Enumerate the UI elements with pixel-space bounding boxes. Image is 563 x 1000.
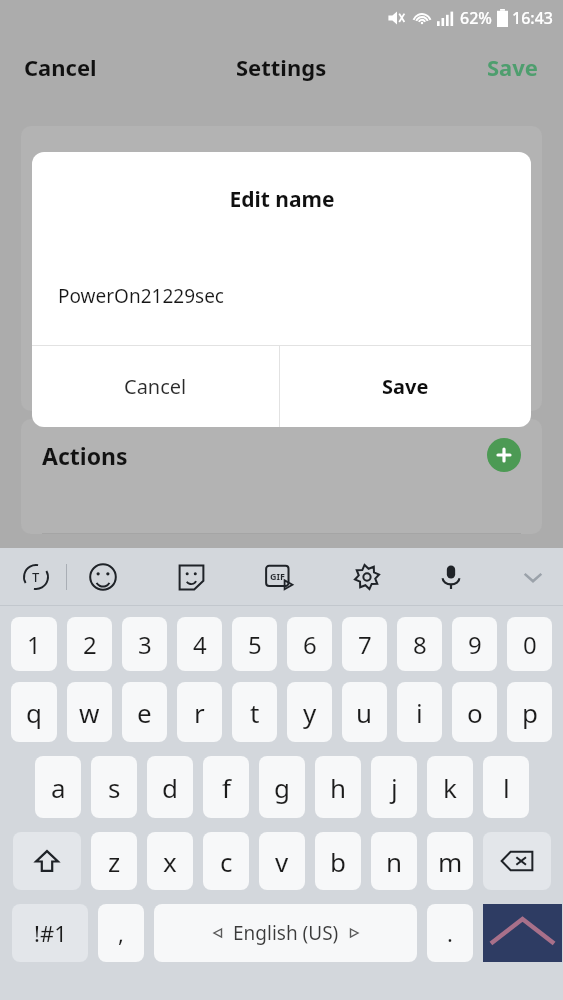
- button[interactable]: c: [203, 832, 249, 890]
- staticText: Save: [382, 373, 429, 400]
- button[interactable]: Keyboard settings: [345, 555, 389, 599]
- staticText: 16:43: [512, 7, 553, 29]
- button[interactable]: .: [427, 904, 473, 962]
- button[interactable]: 9: [452, 617, 497, 671]
- button[interactable]: Shift: [13, 832, 81, 890]
- button[interactable]: Add action: [487, 438, 521, 472]
- button[interactable]: w: [67, 682, 112, 742]
- button[interactable]: d: [147, 756, 193, 818]
- button[interactable]: e: [122, 682, 167, 742]
- staticText: Save: [487, 52, 538, 82]
- button[interactable]: z: [91, 832, 137, 890]
- button[interactable]: x: [147, 832, 193, 890]
- staticText: k: [443, 770, 457, 805]
- button[interactable]: j: [371, 756, 417, 818]
- staticText: .: [447, 918, 453, 948]
- staticText: h: [330, 770, 347, 805]
- button[interactable]: 6: [287, 617, 332, 671]
- button[interactable]: 2: [67, 617, 112, 671]
- staticText: r: [194, 695, 205, 730]
- button[interactable]: h: [315, 756, 361, 818]
- staticText: 1: [27, 628, 41, 661]
- button[interactable]: 5: [232, 617, 277, 671]
- button[interactable]: 0: [507, 617, 552, 671]
- staticText: a: [51, 770, 66, 805]
- button[interactable]: 4: [177, 617, 222, 671]
- button[interactable]: Translate: [14, 555, 58, 599]
- staticText: 7: [358, 628, 372, 661]
- staticText: ,: [118, 918, 124, 948]
- staticText: p: [522, 695, 538, 730]
- button[interactable]: b: [315, 832, 361, 890]
- button[interactable]: 7: [342, 617, 387, 671]
- staticText: b: [330, 844, 346, 879]
- staticText: o: [467, 695, 483, 730]
- staticText: f: [222, 770, 231, 805]
- staticText: c: [220, 844, 233, 879]
- button[interactable]: 8: [397, 617, 442, 671]
- staticText: i: [416, 695, 423, 730]
- staticText: Cancel: [24, 52, 97, 82]
- staticText: 8: [413, 628, 427, 661]
- button[interactable]: Cancel: [24, 52, 97, 82]
- button[interactable]: 3: [122, 617, 167, 671]
- button[interactable]: o: [452, 682, 497, 742]
- button[interactable]: f: [203, 756, 249, 818]
- staticText: j: [391, 770, 398, 805]
- button[interactable]: i: [397, 682, 442, 742]
- button[interactable]: Cancel: [32, 346, 279, 427]
- staticText: g: [274, 770, 290, 805]
- button[interactable]: g: [259, 756, 305, 818]
- button[interactable]: p: [507, 682, 552, 742]
- button[interactable]: Save: [487, 52, 538, 82]
- staticText: x: [163, 844, 177, 879]
- staticText: GIF: [270, 570, 285, 582]
- staticText: English (US): [233, 920, 339, 946]
- staticText: 5: [248, 628, 262, 661]
- button[interactable]: ,: [98, 904, 144, 962]
- button[interactable]: y: [287, 682, 332, 742]
- button[interactable]: r: [177, 682, 222, 742]
- staticText: PowerOn21229sec: [58, 283, 224, 309]
- staticText: 4: [193, 628, 207, 661]
- button[interactable]: 1: [11, 617, 57, 671]
- button[interactable]: GIF: [257, 555, 301, 599]
- button[interactable]: v: [259, 832, 305, 890]
- button[interactable]: Voice input: [429, 555, 473, 599]
- button[interactable]: k: [427, 756, 473, 818]
- staticText: e: [137, 695, 152, 730]
- button[interactable]: s: [91, 756, 137, 818]
- staticText: l: [503, 770, 510, 805]
- button[interactable]: t: [232, 682, 277, 742]
- button[interactable]: !#1: [12, 904, 88, 962]
- staticText: Cancel: [124, 373, 187, 400]
- button[interactable]: n: [371, 832, 417, 890]
- staticText: T: [32, 568, 40, 586]
- button[interactable]: m: [427, 832, 473, 890]
- staticText: 62%: [460, 7, 492, 29]
- button[interactable]: Backspace: [483, 832, 551, 890]
- staticText: Edit name: [229, 185, 335, 214]
- staticText: Actions: [42, 440, 128, 471]
- button[interactable]: Save: [280, 346, 531, 427]
- button[interactable]: l: [483, 756, 529, 818]
- staticText: s: [108, 770, 121, 805]
- button[interactable]: a: [35, 756, 81, 818]
- staticText: d: [162, 770, 178, 805]
- staticText: u: [356, 695, 373, 730]
- staticText: n: [386, 844, 403, 879]
- staticText: 6: [303, 628, 317, 661]
- button[interactable]: Space, English (US): [154, 904, 417, 962]
- staticText: Settings: [236, 52, 327, 82]
- button[interactable]: u: [342, 682, 387, 742]
- button[interactable]: Emoji: [81, 555, 125, 599]
- staticText: 0: [523, 628, 537, 661]
- staticText: !#1: [34, 918, 67, 948]
- button[interactable]: q: [11, 682, 57, 742]
- button[interactable]: Stickers: [169, 555, 213, 599]
- staticText: 3: [138, 628, 152, 661]
- button[interactable]: Enter: [483, 904, 562, 962]
- staticText: y: [303, 695, 317, 730]
- button[interactable]: Hide keyboard: [511, 555, 555, 599]
- staticText: w: [79, 695, 100, 730]
